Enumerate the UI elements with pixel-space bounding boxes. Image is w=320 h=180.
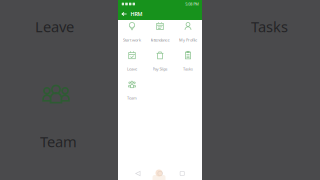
- staticText: Pay Slips: [152, 66, 167, 72]
- staticText: My Profile: [179, 37, 197, 43]
- staticText: Team: [127, 95, 137, 101]
- staticText: Start work: [123, 37, 141, 43]
- staticText: Tasks: [251, 17, 288, 36]
- button[interactable]: Back: [122, 12, 127, 16]
- staticText: Team: [40, 132, 77, 151]
- staticText: Attendance: [150, 37, 169, 43]
- button[interactable]: Back: [136, 171, 140, 176]
- button[interactable]: Team: [118, 78, 146, 107]
- staticText: Leave: [35, 17, 74, 36]
- staticText: 5:08 PM: [185, 1, 199, 7]
- button[interactable]: My Profile: [174, 20, 202, 49]
- button[interactable]: Leave: [118, 49, 146, 78]
- button[interactable]: Home: [158, 171, 162, 176]
- staticText: HRM: [131, 10, 143, 18]
- staticText: Leave: [127, 66, 137, 72]
- button[interactable]: Recents: [180, 171, 184, 176]
- staticText: Tasks: [183, 66, 193, 72]
- button[interactable]: Attendance: [146, 20, 174, 49]
- button[interactable]: Start work: [118, 20, 146, 49]
- button[interactable]: Pay Slips: [146, 49, 174, 78]
- button[interactable]: Tasks: [174, 49, 202, 78]
